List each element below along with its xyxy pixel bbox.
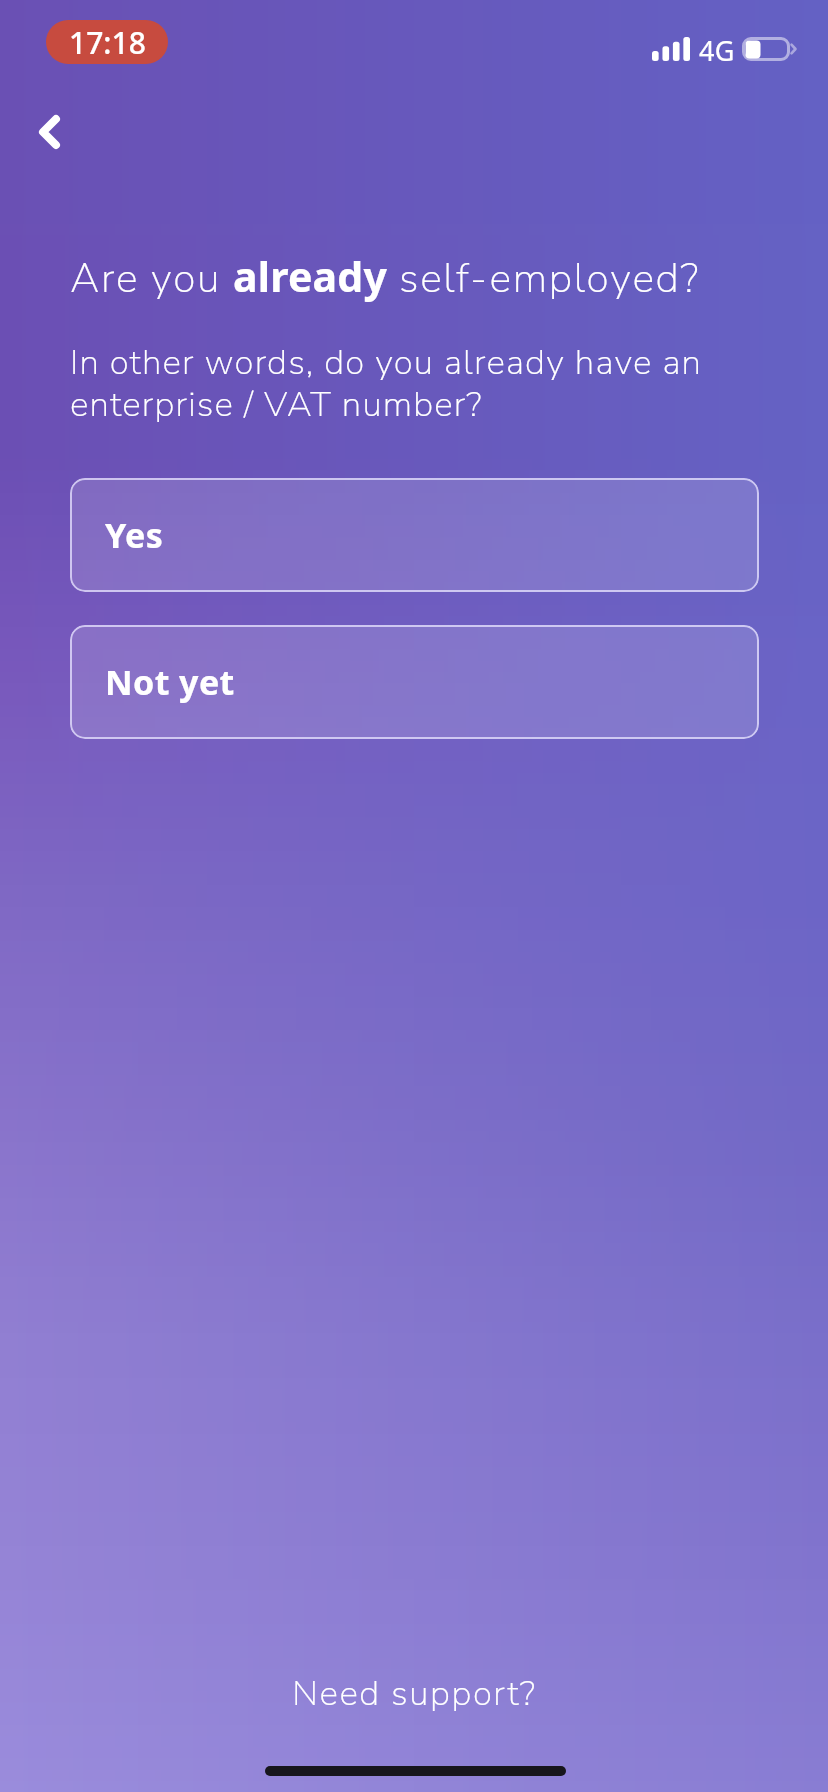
staticText: Are you already self-employed? [70, 248, 790, 306]
staticText: 17:18 [69, 22, 146, 63]
button[interactable]: Not yet [70, 625, 759, 739]
staticText: 4G [699, 32, 735, 69]
staticText: Not yet [105, 659, 235, 705]
button[interactable]: Need support? [0, 1666, 828, 1722]
staticText: Need support? [292, 1670, 537, 1718]
button[interactable]: Yes [70, 478, 759, 592]
button[interactable]: Back [9, 92, 89, 172]
staticText: Yes [105, 512, 164, 558]
staticText: In other words, do you already have an e… [70, 339, 750, 428]
